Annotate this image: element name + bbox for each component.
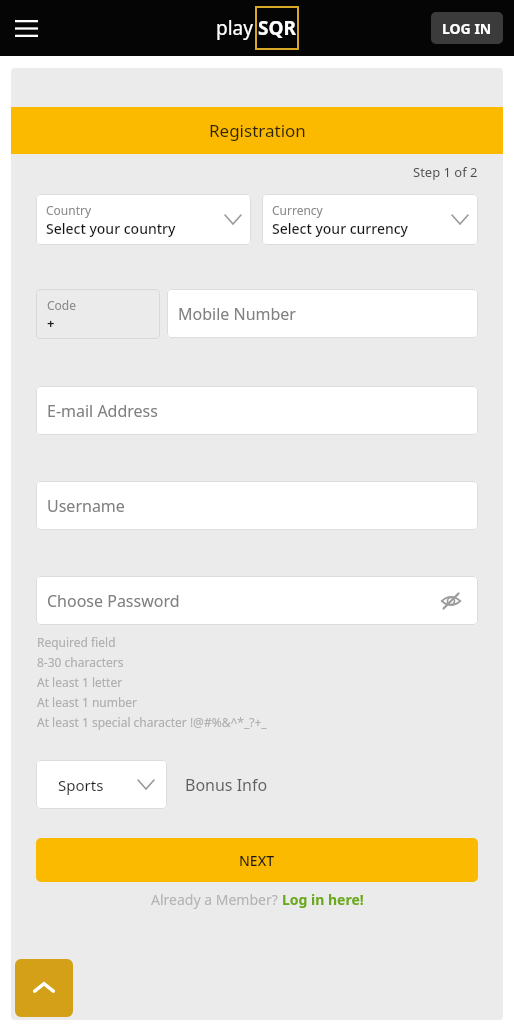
button[interactable]: Show password: [436, 586, 466, 616]
button[interactable]: Username: [36, 481, 478, 530]
staticText: +: [47, 314, 55, 332]
staticText: At least 1 number: [37, 694, 138, 710]
staticText: At least 1 letter: [37, 674, 123, 690]
button[interactable]: Mobile Number: [167, 289, 478, 338]
staticText: Currency: [272, 202, 323, 218]
button[interactable]: play: [216, 6, 299, 50]
staticText: Already a Member?: [151, 890, 282, 909]
staticText: Code: [47, 297, 76, 313]
staticText: LOG IN: [442, 19, 492, 38]
button[interactable]: Choose Password: [36, 576, 478, 625]
staticText: play: [216, 15, 253, 41]
staticText: Mobile Number: [178, 303, 296, 325]
staticText: Username: [47, 495, 125, 517]
staticText: Registration: [209, 119, 306, 142]
button[interactable]: Menu: [6, 8, 46, 48]
button[interactable]: Country: [36, 194, 251, 245]
button[interactable]: LOG IN: [431, 12, 503, 44]
staticText: At least 1 special character !@#%&^*_?+_: [37, 714, 267, 730]
staticText: Select your currency: [272, 219, 409, 238]
button[interactable]: Code: [36, 289, 160, 339]
button[interactable]: E-mail Address: [36, 386, 478, 435]
staticText: Sports: [58, 775, 104, 795]
staticText: NEXT: [239, 851, 275, 870]
staticText: 8-30 characters: [37, 654, 124, 670]
button[interactable]: NEXT: [36, 838, 478, 882]
staticText: Bonus Info: [185, 774, 268, 796]
staticText: Log in here!: [282, 890, 364, 909]
staticText: Choose Password: [47, 590, 180, 612]
staticText: E-mail Address: [47, 400, 158, 422]
button[interactable]: Log in here!: [282, 890, 364, 909]
staticText: Required field: [37, 634, 116, 650]
staticText: Country: [46, 202, 92, 218]
button[interactable]: Scroll to top: [15, 959, 73, 1017]
button[interactable]: Sports: [36, 760, 167, 809]
staticText: Step 1 of 2: [413, 163, 478, 181]
button[interactable]: Currency: [262, 194, 478, 245]
staticText: SQR: [258, 15, 296, 41]
staticText: Select your country: [46, 219, 176, 238]
